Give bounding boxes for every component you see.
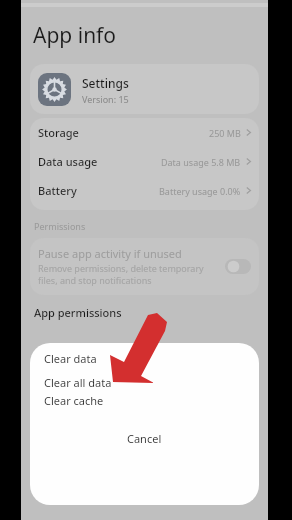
staticText: Clear cache — [44, 393, 104, 408]
staticText: Clear data — [44, 351, 97, 366]
button[interactable]: Clear cache — [30, 391, 259, 409]
button[interactable]: Pause app activity if unused — [30, 238, 259, 295]
other: Settings app icon — [38, 73, 71, 106]
staticText: Settings — [82, 75, 129, 91]
button[interactable]: Clear data — [30, 343, 259, 373]
staticText: Data usage 5.8 MB — [161, 156, 241, 168]
staticText: Permissions — [34, 220, 86, 232]
staticText: files, and stop notifications — [38, 274, 152, 286]
staticText: Version: 15 — [82, 93, 129, 105]
button[interactable]: Battery — [30, 176, 259, 205]
staticText: Remove permissions, delete temporary — [38, 262, 204, 274]
staticText: Battery usage 0.0% — [159, 185, 241, 197]
staticText: Storage — [38, 125, 79, 140]
button[interactable]: Settings app icon — [30, 64, 259, 114]
staticText: App permissions — [34, 305, 122, 320]
button[interactable]: Data usage — [30, 147, 259, 176]
staticText: 250 MB — [209, 127, 241, 139]
staticText: Clear all data — [44, 375, 112, 390]
button[interactable]: Clear all data — [30, 373, 259, 391]
staticText: Cancel — [127, 431, 162, 446]
button[interactable]: Storage — [30, 118, 259, 147]
staticText: Pause app activity if unused — [38, 246, 182, 261]
button[interactable]: Cancel — [30, 425, 259, 451]
staticText: App info — [33, 21, 117, 50]
staticText: Battery — [38, 183, 77, 198]
staticText: Data usage — [38, 154, 98, 169]
